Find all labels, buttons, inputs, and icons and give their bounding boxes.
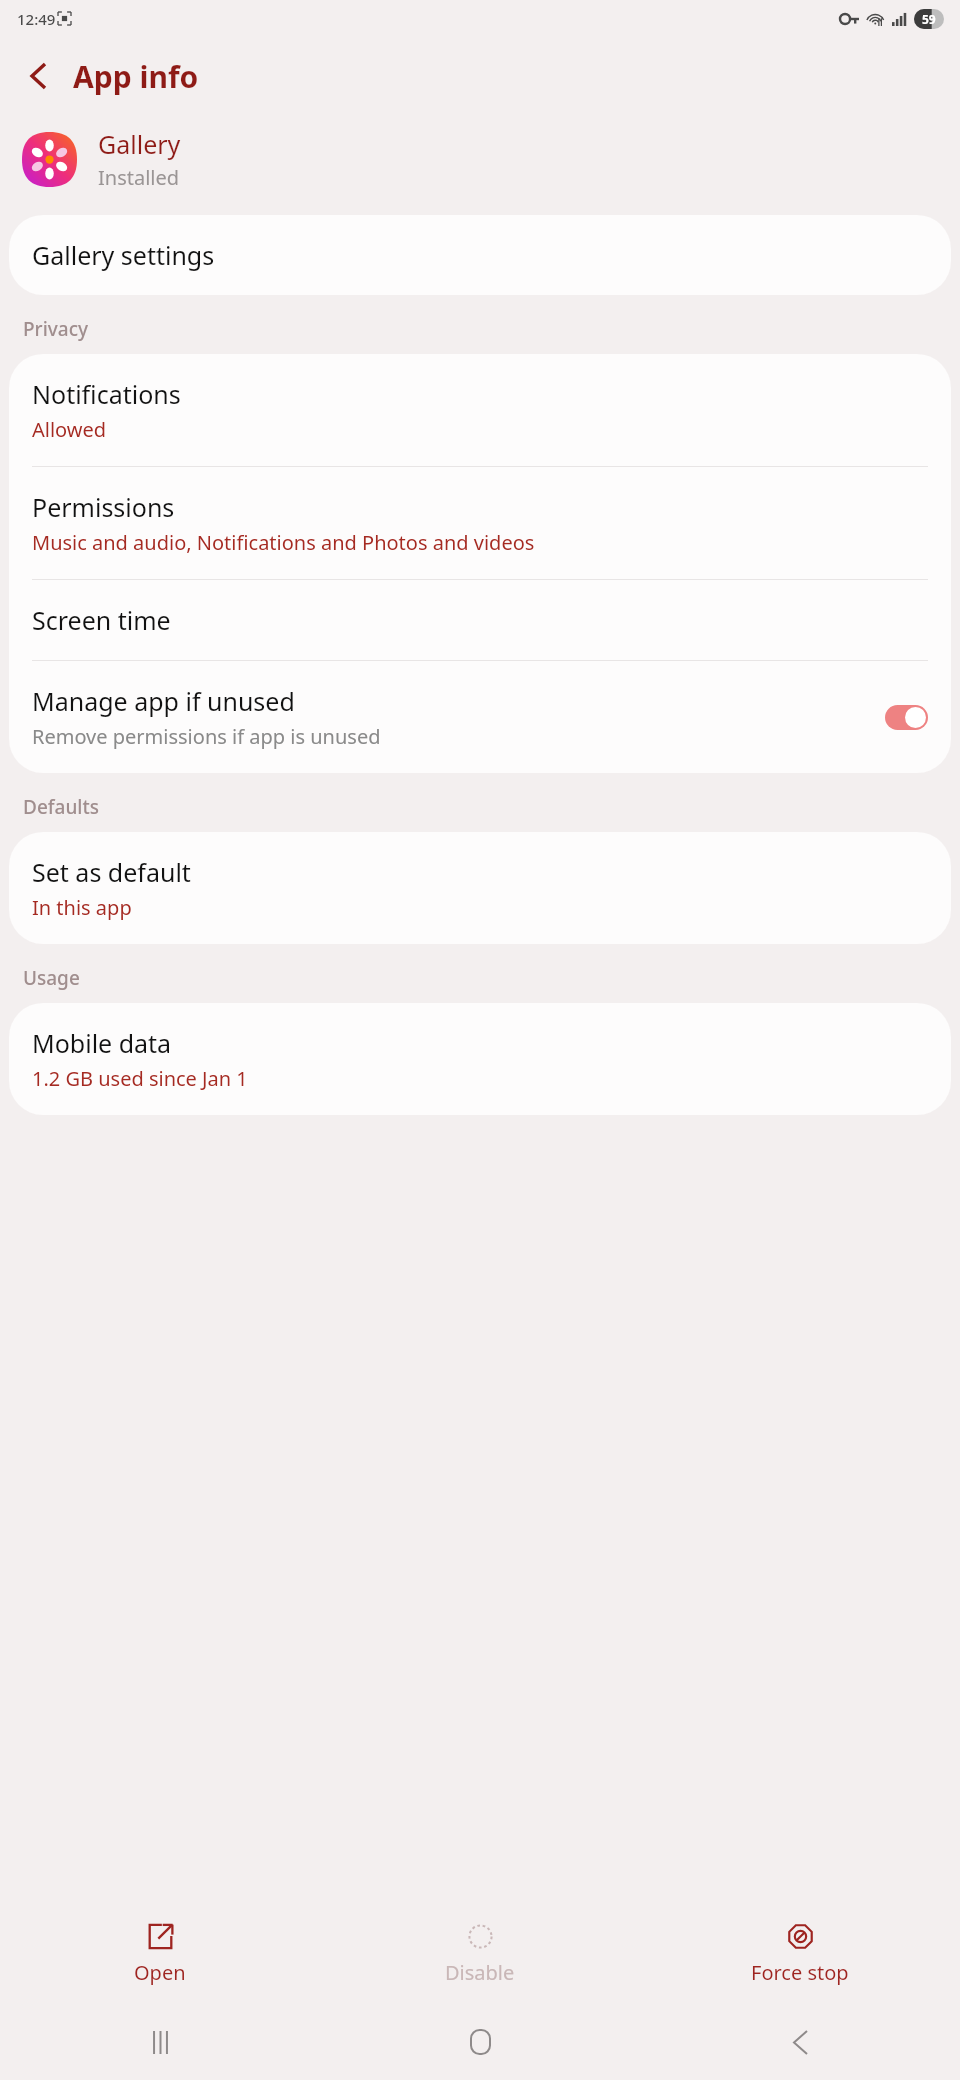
staticText: 1.2 GB used since Jan 1 bbox=[32, 1065, 248, 1092]
staticText: Allowed bbox=[32, 416, 107, 443]
staticText: In this app bbox=[32, 894, 132, 921]
staticText: Open bbox=[134, 1959, 186, 1986]
staticText: Usage bbox=[23, 965, 80, 991]
button[interactable]: Home bbox=[320, 2004, 640, 2080]
staticText: Permissions bbox=[32, 490, 175, 524]
button[interactable]: Manage app if unused bbox=[9, 661, 951, 773]
staticText: Privacy bbox=[23, 316, 88, 342]
button[interactable]: Disable bbox=[320, 1904, 640, 2004]
button[interactable]: Mobile data bbox=[9, 1003, 951, 1115]
staticText: Music and audio, Notifications and Photo… bbox=[32, 529, 535, 556]
button[interactable]: Back bbox=[640, 2004, 960, 2080]
button[interactable]: Back bbox=[14, 52, 62, 100]
staticText: Gallery settings bbox=[32, 238, 215, 272]
button[interactable]: Notifications bbox=[9, 354, 951, 466]
button[interactable]: Force stop bbox=[640, 1904, 960, 2004]
button[interactable]: Permissions bbox=[9, 467, 951, 579]
staticText: Disable bbox=[445, 1959, 515, 1986]
staticText: Gallery bbox=[98, 127, 181, 161]
button[interactable]: Recents bbox=[0, 2004, 320, 2080]
button[interactable]: Manage app if unused toggle bbox=[885, 705, 928, 730]
staticText: Installed bbox=[98, 164, 180, 191]
button[interactable]: Set as default bbox=[9, 832, 951, 944]
staticText: Notifications bbox=[32, 377, 181, 411]
staticText: Force stop bbox=[751, 1959, 849, 1986]
staticText: App info bbox=[73, 56, 199, 97]
button[interactable]: Gallery settings bbox=[9, 215, 951, 295]
staticText: Manage app if unused bbox=[32, 684, 295, 718]
staticText: Mobile data bbox=[32, 1026, 172, 1060]
staticText: 12:49 bbox=[17, 9, 56, 29]
button[interactable]: Screen time bbox=[9, 580, 951, 660]
staticText: 59 bbox=[922, 11, 936, 27]
staticText: Defaults bbox=[23, 794, 100, 820]
staticText: Set as default bbox=[32, 855, 191, 889]
staticText: Remove permissions if app is unused bbox=[32, 723, 381, 750]
button[interactable]: Open bbox=[0, 1904, 320, 2004]
staticText: Screen time bbox=[32, 603, 171, 637]
